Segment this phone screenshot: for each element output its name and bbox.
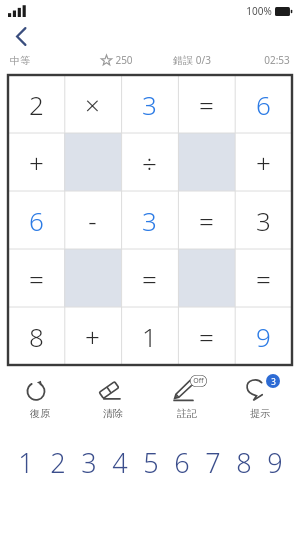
staticText: 1 xyxy=(142,319,157,354)
button[interactable]: + xyxy=(235,133,292,191)
staticText: 5 xyxy=(143,444,159,481)
staticText: 中等 xyxy=(10,54,30,67)
button[interactable]: Erase xyxy=(80,376,146,420)
staticText: = xyxy=(199,203,214,238)
button[interactable]: Notes xyxy=(154,376,220,420)
staticText: = xyxy=(142,261,157,296)
staticText: 2 xyxy=(29,87,44,122)
button[interactable]: = xyxy=(178,307,235,365)
button[interactable]: - xyxy=(64,191,121,249)
button[interactable]: = xyxy=(121,249,178,307)
button[interactable]: Hint xyxy=(227,376,293,420)
staticText: = xyxy=(29,261,44,296)
button[interactable]: 6 xyxy=(235,75,292,133)
staticText: 6 xyxy=(174,444,190,481)
staticText: + xyxy=(85,319,100,354)
button[interactable]: 9 xyxy=(235,307,292,365)
staticText: 2 xyxy=(50,444,66,481)
button[interactable]: = xyxy=(8,249,64,307)
staticText: 9 xyxy=(267,444,283,481)
staticText: - xyxy=(88,203,97,238)
staticText: 9 xyxy=(256,319,271,354)
staticText: 錯誤 0/3 xyxy=(173,53,211,67)
button[interactable]: = xyxy=(178,75,235,133)
staticText: 復原 xyxy=(30,407,50,420)
staticText: × xyxy=(85,87,100,122)
staticText: 6 xyxy=(256,87,271,122)
button[interactable]: 6 xyxy=(8,191,64,249)
button[interactable]: 3 xyxy=(121,191,178,249)
staticText: 250 xyxy=(115,53,133,67)
button[interactable]: + xyxy=(8,133,64,191)
staticText: 3 xyxy=(256,203,271,238)
staticText: + xyxy=(256,145,271,180)
button[interactable]: = xyxy=(235,249,292,307)
staticText: 4 xyxy=(112,444,128,481)
button[interactable]: 8 xyxy=(8,307,64,365)
button[interactable]: 8 xyxy=(228,442,259,482)
staticText: 1 xyxy=(18,444,34,481)
staticText: 提示 xyxy=(250,407,270,420)
staticText: 3 xyxy=(271,376,276,387)
staticText: = xyxy=(199,319,214,354)
staticText: 02:53 xyxy=(264,53,290,67)
button[interactable]: Undo xyxy=(7,376,73,420)
button[interactable]: 5 xyxy=(135,442,166,482)
staticText: 8 xyxy=(236,444,252,481)
staticText: 3 xyxy=(81,444,97,481)
button[interactable]: 9 xyxy=(259,442,290,482)
staticText: 7 xyxy=(205,444,221,481)
staticText: + xyxy=(29,145,44,180)
staticText: 8 xyxy=(29,319,44,354)
button[interactable]: ÷ xyxy=(121,133,178,191)
button[interactable]: 6 xyxy=(166,442,197,482)
staticText: Off xyxy=(193,376,204,386)
button[interactable]: 1 xyxy=(121,307,178,365)
staticText: ÷ xyxy=(142,145,157,180)
button[interactable]: 1 xyxy=(10,442,42,482)
staticText: 註記 xyxy=(177,407,197,420)
button[interactable]: 3 xyxy=(235,191,292,249)
button[interactable]: = xyxy=(178,191,235,249)
button[interactable]: 7 xyxy=(197,442,228,482)
button[interactable]: 2 xyxy=(42,442,73,482)
button[interactable]: + xyxy=(64,307,121,365)
button[interactable]: Back xyxy=(6,23,36,49)
staticText: 清除 xyxy=(103,407,123,420)
button[interactable]: 2 xyxy=(8,75,64,133)
staticText: = xyxy=(199,87,214,122)
staticText: 3 xyxy=(142,203,157,238)
staticText: 6 xyxy=(29,203,44,238)
button[interactable]: 3 xyxy=(73,442,104,482)
button[interactable]: 3 xyxy=(121,75,178,133)
button[interactable]: 4 xyxy=(104,442,135,482)
staticText: 100% xyxy=(246,4,272,18)
button[interactable]: × xyxy=(64,75,121,133)
staticText: 3 xyxy=(142,87,157,122)
staticText: = xyxy=(256,261,271,296)
